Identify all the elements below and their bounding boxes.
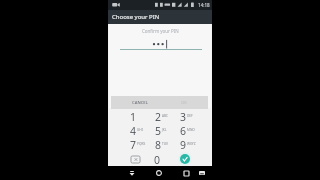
staticText: WXYZ [187, 142, 196, 146]
button[interactable]: 2 [147, 110, 171, 124]
button[interactable]: Recents [180, 167, 192, 179]
staticText: 5 [155, 124, 162, 138]
staticText: 6 [180, 124, 187, 138]
staticText: 14:18 [198, 2, 210, 8]
staticText: OK [181, 100, 187, 106]
button[interactable]: 9 [172, 138, 196, 152]
button[interactable]: Back [126, 167, 138, 179]
button[interactable]: CANCEL [122, 96, 158, 109]
staticText: GHI [137, 128, 143, 132]
staticText: 7 [130, 138, 137, 152]
staticText: 9 [180, 138, 187, 152]
staticText: TUV [162, 142, 169, 146]
staticText: DEF [187, 114, 193, 118]
button[interactable]: 8 [147, 138, 171, 152]
button[interactable]: 5 [147, 124, 171, 138]
staticText: 2 [155, 110, 162, 124]
staticText: 4 [130, 124, 137, 138]
button[interactable]: 6 [172, 124, 196, 138]
staticText: 0 [154, 153, 161, 167]
button[interactable]: 1 [122, 110, 146, 124]
staticText: Confirm your PIN [142, 28, 179, 34]
button[interactable]: Backspace [124, 152, 147, 166]
button[interactable]: Confirm [173, 151, 196, 167]
staticText: Choose your PIN [112, 13, 160, 21]
button[interactable]: 4 [122, 124, 146, 138]
button[interactable]: Keyboard [196, 167, 208, 179]
staticText: JKL [162, 128, 167, 132]
staticText: 3 [180, 110, 187, 124]
staticText: 1 [130, 110, 137, 124]
button[interactable]: 0 [147, 153, 168, 167]
button[interactable]: Home [153, 167, 165, 179]
button[interactable]: 3 [172, 110, 196, 124]
staticText: 8 [155, 138, 162, 152]
staticText: CANCEL [132, 100, 148, 106]
staticText: ABC [162, 114, 169, 118]
button[interactable]: 7 [122, 138, 146, 152]
staticText: PQRS [137, 142, 146, 146]
staticText: MNO [187, 128, 195, 132]
